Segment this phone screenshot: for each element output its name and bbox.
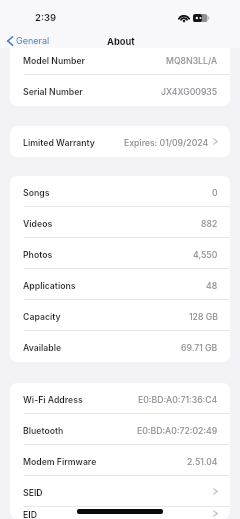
staticText: Capacity xyxy=(23,312,61,323)
button[interactable]: Modem Firmware xyxy=(10,445,230,476)
button[interactable]: Videos xyxy=(10,207,230,238)
button[interactable]: Available xyxy=(10,331,230,362)
staticText: 2:39 xyxy=(35,12,57,23)
button[interactable]: General xyxy=(0,33,58,48)
staticText: MQ8N3LL/A xyxy=(166,56,218,67)
button[interactable]: Songs xyxy=(10,176,230,207)
staticText: E0:BD:A0:71:36:C4 xyxy=(138,395,218,406)
button[interactable]: EID xyxy=(10,507,230,519)
button[interactable]: Serial Number xyxy=(10,75,230,106)
button[interactable]: Photos xyxy=(10,238,230,269)
staticText: Limited Warranty xyxy=(23,138,95,149)
button[interactable]: SEID xyxy=(10,476,230,507)
staticText: 0 xyxy=(212,188,218,199)
staticText: Serial Number xyxy=(23,87,83,98)
staticText: Model Number xyxy=(23,56,86,67)
button[interactable]: Model Number xyxy=(10,44,230,75)
staticText: 4,550 xyxy=(193,250,218,261)
staticText: Wi-Fi Address xyxy=(23,395,83,406)
staticText: Bluetooth xyxy=(23,426,64,437)
staticText: JX4XG00935 xyxy=(161,87,218,98)
staticText: Photos xyxy=(23,250,53,261)
staticText: SEID xyxy=(23,488,43,499)
staticText: Available xyxy=(23,343,62,354)
staticText: 128 GB xyxy=(189,312,218,323)
staticText: EID xyxy=(23,510,37,519)
button[interactable]: Applications xyxy=(10,269,230,300)
staticText: Songs xyxy=(23,188,50,199)
button[interactable]: Wi-Fi Address xyxy=(10,383,230,414)
staticText: About xyxy=(107,36,135,47)
staticText: E0:BD:A0:72:02:49 xyxy=(137,426,218,437)
staticText: 2.51.04 xyxy=(187,457,218,468)
other: Battery xyxy=(193,14,209,22)
staticText: Videos xyxy=(23,219,53,230)
button[interactable]: Capacity xyxy=(10,300,230,331)
button[interactable]: Bluetooth xyxy=(10,414,230,445)
staticText: 48 xyxy=(206,281,218,292)
staticText: Expires: 01/09/2024 xyxy=(124,138,209,149)
staticText: 882 xyxy=(201,219,218,230)
staticText: 69.71 GB xyxy=(181,343,218,354)
staticText: General xyxy=(16,35,50,46)
staticText: Modem Firmware xyxy=(23,457,97,468)
staticText: Applications xyxy=(23,281,76,292)
button[interactable]: Limited Warranty xyxy=(10,126,230,157)
